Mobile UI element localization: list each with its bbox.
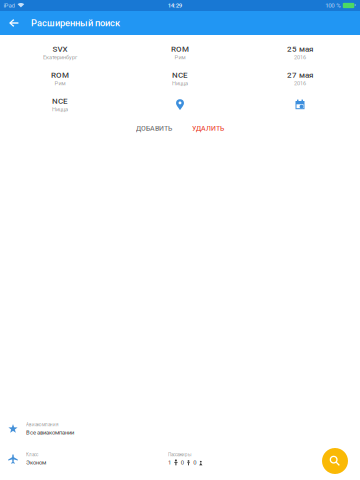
button[interactable]: NCE xyxy=(0,91,120,117)
staticText: Все авиакомпании xyxy=(26,429,74,436)
button[interactable]: 27 мая xyxy=(240,65,360,91)
staticText: 1 xyxy=(168,459,171,466)
staticText: Авиакомпания xyxy=(26,422,58,427)
staticText: Рим xyxy=(54,80,65,87)
staticText: Эконом xyxy=(26,459,46,466)
staticText: 14:29 xyxy=(168,2,182,9)
staticText: 27 мая xyxy=(287,70,313,80)
button[interactable]: УДАЛИТЬ xyxy=(189,120,227,136)
button[interactable]: 25 мая xyxy=(240,39,360,65)
button[interactable]: Авиакомпания xyxy=(0,414,360,444)
staticText: SVX xyxy=(52,44,67,54)
button[interactable]: Назад xyxy=(0,11,27,35)
button[interactable]: Выбрать дату xyxy=(240,91,360,117)
button[interactable]: SVX xyxy=(0,39,120,65)
staticText: 100 % xyxy=(325,2,340,9)
staticText: ROM xyxy=(51,70,69,80)
button[interactable]: Поиск xyxy=(322,448,348,474)
staticText: 2016 xyxy=(294,54,306,61)
staticText: 0 xyxy=(181,459,184,466)
staticText: Екатеринбург xyxy=(43,54,77,61)
staticText: Пассажиры xyxy=(168,452,192,457)
staticText: ROM xyxy=(171,44,189,54)
staticText: 25 мая xyxy=(287,44,313,54)
staticText: 2016 xyxy=(294,80,306,87)
staticText: iPad xyxy=(3,2,14,9)
staticText: Класс xyxy=(26,452,38,457)
staticText: Ницца xyxy=(172,80,188,87)
button[interactable]: Класс xyxy=(0,444,168,474)
button[interactable]: ДОБАВИТЬ xyxy=(133,120,175,136)
staticText: УДАЛИТЬ xyxy=(192,124,224,132)
button[interactable]: NCE xyxy=(120,65,240,91)
staticText: NCE xyxy=(172,70,188,80)
button[interactable]: ROM xyxy=(120,39,240,65)
staticText: ДОБАВИТЬ xyxy=(136,124,172,132)
staticText: NCE xyxy=(52,96,68,106)
staticText: Расширенный поиск xyxy=(31,17,120,28)
staticText: 0 xyxy=(193,459,196,466)
staticText: Рим xyxy=(174,54,185,61)
staticText: Ницца xyxy=(52,106,68,113)
button[interactable]: ROM xyxy=(0,65,120,91)
button[interactable]: Пассажиры xyxy=(168,444,288,474)
button[interactable]: Выбрать город xyxy=(120,91,240,117)
